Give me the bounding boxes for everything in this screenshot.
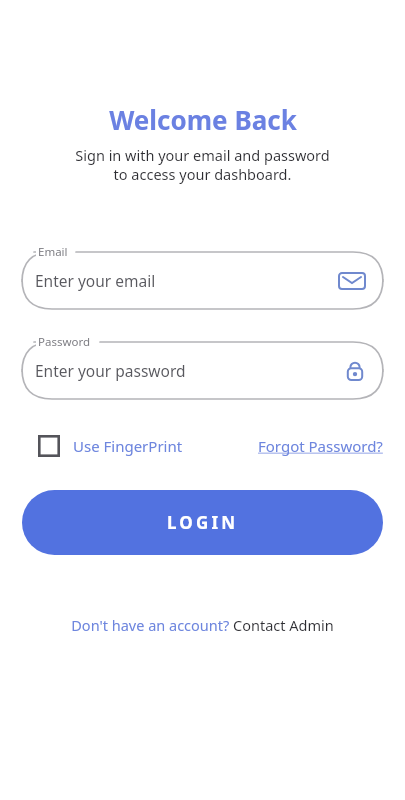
button[interactable]: Password <box>343 357 367 385</box>
staticText: Sign in with your email and password to … <box>75 145 330 184</box>
button[interactable]: Don't have an account? Contact Admin <box>71 615 334 635</box>
staticText: Welcome Back <box>109 102 297 137</box>
button[interactable]: LOGIN <box>22 490 383 555</box>
staticText: LOGIN <box>167 511 239 534</box>
staticText: Email <box>38 244 68 260</box>
button[interactable]: Email <box>337 269 367 293</box>
staticText: Don't have an account? Contact Admin <box>71 615 334 635</box>
staticText: Use FingerPrint <box>73 436 183 456</box>
staticText: Enter your email <box>35 270 156 291</box>
staticText: Forgot Password? <box>258 436 383 456</box>
staticText: Password <box>38 334 91 350</box>
button[interactable]: Use FingerPrint <box>38 435 183 457</box>
staticText: Enter your password <box>35 360 186 381</box>
button[interactable]: Forgot Password? <box>258 436 383 456</box>
